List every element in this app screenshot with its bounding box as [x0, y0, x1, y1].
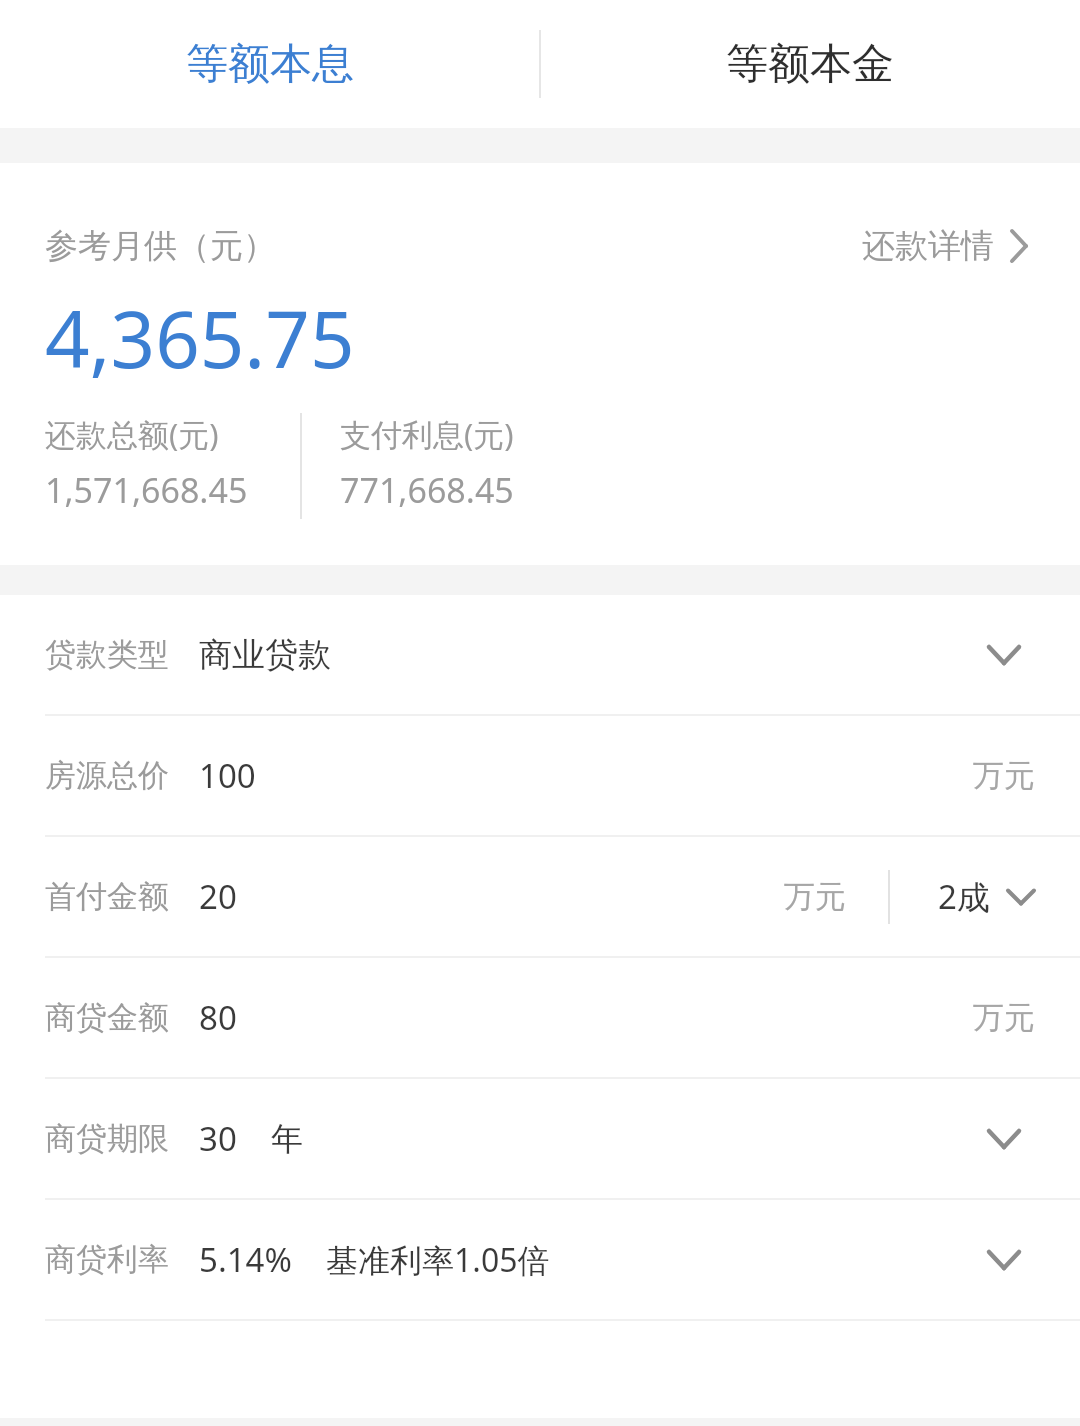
staticText: 商贷金额 [45, 998, 169, 1037]
staticText: 支付利息(元) [340, 413, 514, 455]
button[interactable]: 房源总价 [0, 716, 1080, 837]
button[interactable]: 贷款类型 [0, 595, 1080, 716]
button[interactable]: 商贷金额 [0, 958, 1080, 1079]
staticText: 万元 [973, 998, 1035, 1037]
staticText: 基准利率1.05倍 [326, 1238, 550, 1282]
button[interactable]: 还款详情 [862, 225, 1032, 267]
staticText: 还款总额(元) [45, 413, 219, 455]
staticText: 30 [199, 1116, 237, 1161]
button[interactable]: 商贷期限 [0, 1079, 1080, 1200]
other: Repayment details [1006, 226, 1032, 266]
staticText: 万元 [973, 756, 1035, 795]
other: Select ratio [1004, 885, 1038, 909]
button[interactable]: 首付金额 [0, 837, 1080, 958]
staticText: 5.14% [199, 1237, 292, 1282]
button[interactable]: 商贷利率 [0, 1200, 1080, 1321]
staticText: 4,365.75 [45, 285, 355, 391]
staticText: 房源总价 [45, 756, 169, 795]
staticText: 商贷期限 [45, 1119, 169, 1158]
other: Expand 商贷利率 [976, 1243, 1032, 1277]
staticText: 771,668.45 [340, 467, 514, 513]
button[interactable]: 2成 [938, 874, 1038, 919]
staticText: 万元 [784, 877, 846, 916]
staticText: 20 [199, 874, 237, 919]
staticText: 参考月供（元） [45, 225, 276, 267]
staticText: 等额本息 [186, 38, 354, 91]
staticText: 还款详情 [862, 225, 994, 267]
staticText: 80 [199, 995, 237, 1040]
staticText: 商贷利率 [45, 1240, 169, 1279]
staticText: 2成 [938, 874, 990, 919]
button[interactable]: 等额本金 [540, 0, 1080, 128]
staticText: 100 [199, 753, 256, 798]
staticText: 1,571,668.45 [45, 467, 248, 513]
staticText: 首付金额 [45, 877, 169, 916]
staticText: 商业贷款 [199, 634, 331, 676]
other: Expand 贷款类型 [976, 638, 1032, 672]
staticText: 等额本金 [726, 38, 894, 91]
staticText: 贷款类型 [45, 635, 169, 674]
staticText: 年 [271, 1119, 303, 1159]
other: Expand 商贷期限 [976, 1122, 1032, 1156]
button[interactable]: 等额本息 [0, 0, 540, 128]
